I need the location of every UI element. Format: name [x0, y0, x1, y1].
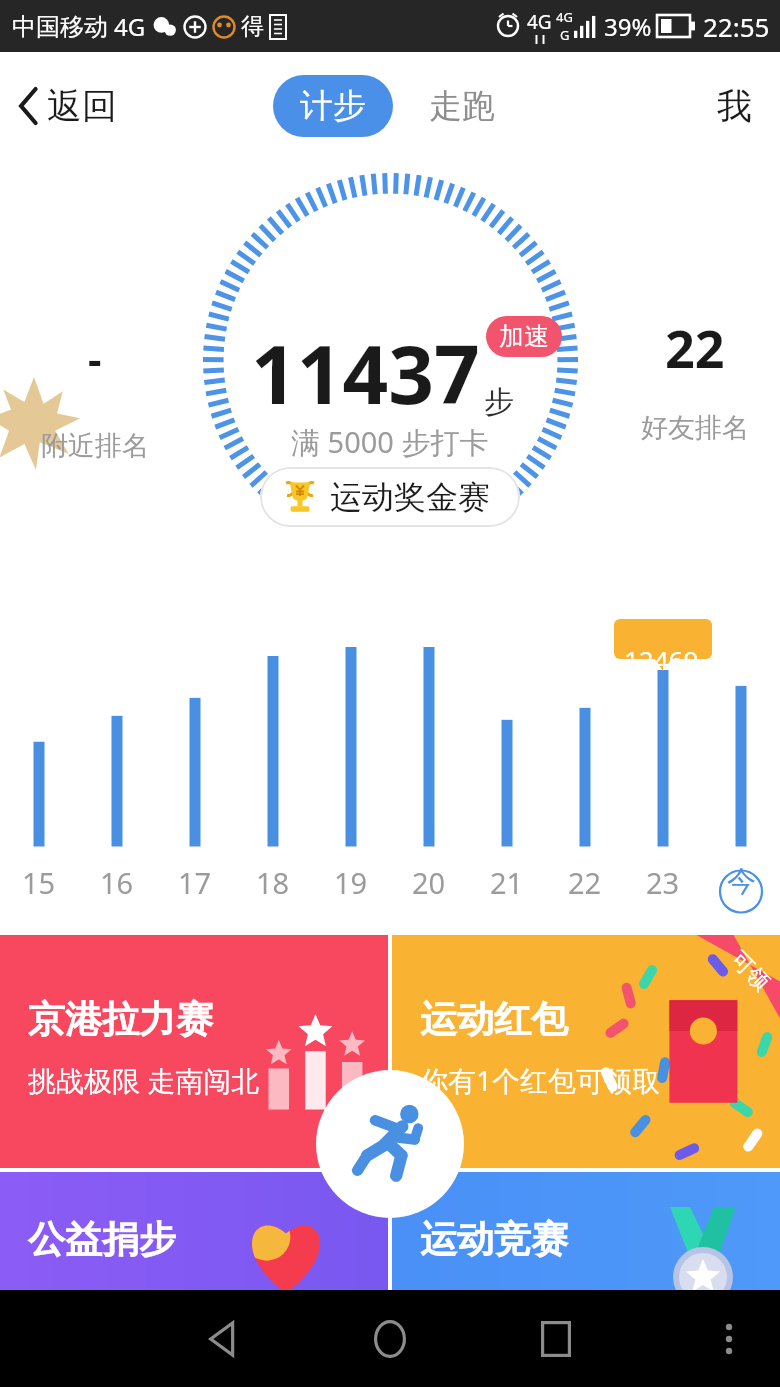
button[interactable]: 公益捐步 — [0, 1172, 388, 1290]
staticText: - — [88, 330, 102, 387]
staticText: 附近排名 — [41, 429, 149, 463]
button[interactable]: 今 — [702, 863, 780, 900]
staticText: 公益捐步 — [28, 1216, 176, 1263]
staticText: 20 — [412, 863, 446, 902]
staticText: 15 — [22, 863, 56, 902]
button[interactable]: 运动竞赛 — [392, 1172, 780, 1290]
staticText: 挑战极限 走南闯北 — [28, 1061, 260, 1099]
button[interactable]: Recent apps — [518, 1301, 594, 1377]
button[interactable]: 运动奖金赛 — [260, 467, 520, 527]
staticText: 23 — [646, 863, 680, 902]
staticText: 18 — [256, 863, 290, 902]
staticText: 运动竞赛 — [420, 1216, 568, 1263]
staticText: 21 — [490, 863, 524, 902]
button[interactable]: 我 — [709, 76, 760, 136]
button[interactable]: Back — [186, 1301, 262, 1377]
staticText: G — [560, 26, 570, 44]
button[interactable]: 运动红包 — [392, 935, 780, 1168]
staticText: 4G — [114, 10, 146, 43]
staticText: 17 — [178, 863, 212, 902]
staticText: 你有1个红包可领取 — [420, 1061, 661, 1099]
staticText: 22:55 — [703, 9, 770, 44]
button[interactable]: Home — [352, 1301, 428, 1377]
button[interactable]: 走跑 — [417, 75, 507, 137]
staticText: 京港拉力赛 — [28, 996, 213, 1043]
staticText: 39% — [604, 10, 652, 43]
button[interactable]: 加速 — [486, 316, 562, 357]
staticText: 步 — [484, 383, 514, 421]
staticText: 22 — [568, 863, 602, 902]
button[interactable]: 京港拉力赛 — [0, 935, 388, 1168]
staticText: 中国移动 — [12, 12, 108, 42]
button[interactable]: Start running — [316, 1070, 464, 1218]
staticText: 满 5000 步打卡 — [291, 422, 489, 462]
staticText: 运动奖金赛 — [330, 477, 490, 517]
staticText: 4G — [556, 8, 573, 26]
button[interactable]: 计步 — [273, 75, 393, 137]
staticText: 今 — [727, 863, 756, 900]
staticText: 得 — [241, 12, 264, 41]
staticText: 19 — [334, 863, 368, 902]
staticText: 11437 — [251, 318, 480, 427]
staticText: 16 — [100, 863, 134, 902]
staticText: 4G — [527, 9, 552, 35]
button[interactable]: More options — [698, 1308, 760, 1370]
staticText: 运动红包 — [420, 996, 568, 1043]
staticText: 返回 — [47, 84, 117, 128]
staticText: 我 — [717, 84, 752, 128]
staticText: 22 — [665, 312, 725, 383]
staticText: 好友排名 — [641, 411, 749, 445]
staticText: 12469步 — [624, 642, 702, 711]
button[interactable]: 返回 — [12, 76, 123, 136]
staticText: 计步 — [300, 85, 366, 127]
button[interactable]: 22 — [620, 312, 770, 445]
staticText: 可领 — [724, 945, 775, 996]
button[interactable]: - — [20, 330, 170, 463]
staticText: 加速 — [499, 321, 549, 352]
staticText: 走跑 — [429, 85, 495, 127]
